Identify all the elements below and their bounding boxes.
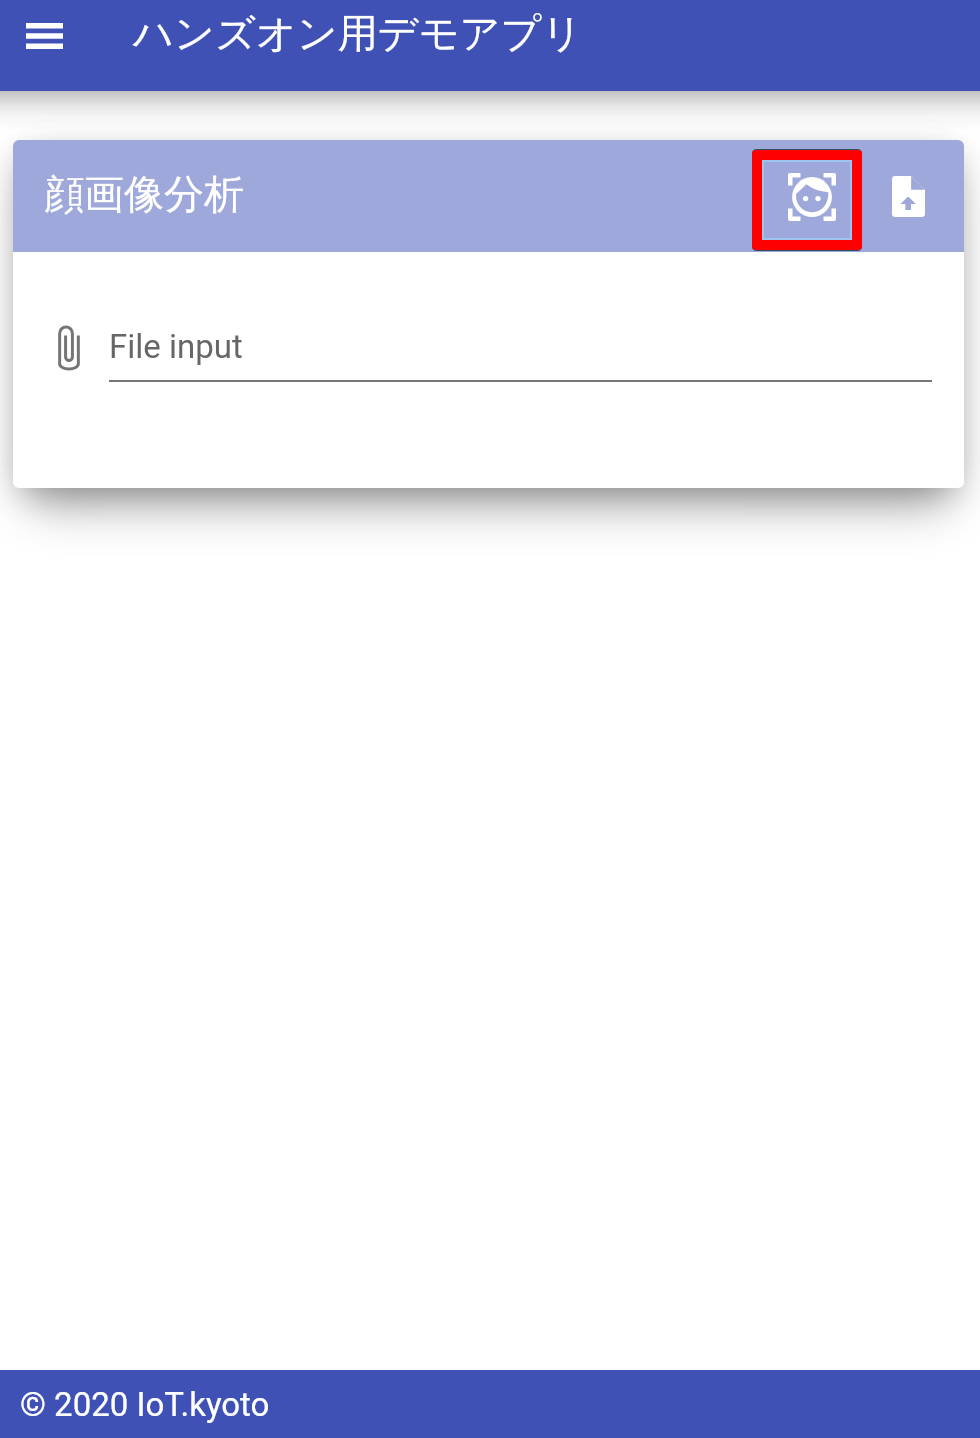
button[interactable]: Menu — [8, 0, 80, 71]
staticText: © 2020 IoT.kyoto — [20, 1385, 270, 1424]
staticText: ハンズオン用デモアプリ — [133, 8, 583, 58]
other: Attach file — [58, 327, 80, 369]
button[interactable]: Upload file — [874, 162, 942, 230]
staticText: File input — [109, 327, 243, 366]
staticText: 顔画像分析 — [44, 169, 244, 219]
button[interactable]: Face analysis — [752, 150, 862, 250]
